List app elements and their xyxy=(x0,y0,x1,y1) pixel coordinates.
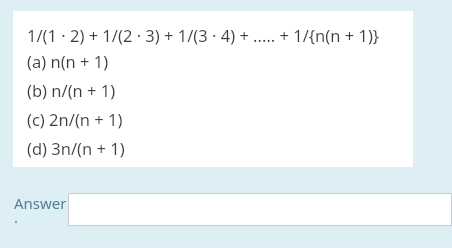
staticText: Answer: xyxy=(14,193,68,226)
button[interactable]: (a) n(n + 1) xyxy=(27,46,109,75)
staticText: (a) n(n + 1) xyxy=(27,50,109,72)
staticText: (d) 3n/(n + 1) xyxy=(27,137,125,159)
button[interactable]: (b) n/(n + 1) xyxy=(27,75,116,104)
button[interactable]: (d) 3n/(n + 1) xyxy=(27,133,125,162)
staticText: 1/(1 · 2) + 1/(2 · 3) + 1/(3 · 4) + ....… xyxy=(27,24,380,46)
button[interactable]: Answer input field xyxy=(68,193,452,226)
staticText: (b) n/(n + 1) xyxy=(27,79,116,101)
staticText: (c) 2n/(n + 1) xyxy=(27,108,123,130)
button[interactable]: (c) 2n/(n + 1) xyxy=(27,104,123,133)
